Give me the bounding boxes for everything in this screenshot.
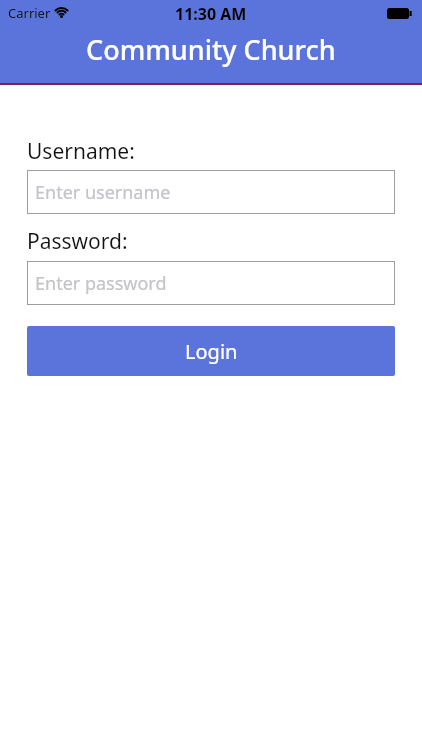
staticText: Password: [27, 227, 128, 256]
button[interactable]: Login [27, 326, 395, 376]
staticText: Enter password [35, 271, 167, 296]
staticText: 11:30 AM [175, 3, 247, 25]
staticText: Enter username [35, 180, 171, 205]
staticText: Username: [27, 137, 135, 166]
staticText: Carrier [8, 4, 51, 22]
staticText: Community Church [86, 31, 336, 68]
button[interactable]: Enter username [27, 170, 395, 214]
button[interactable]: Enter password [27, 261, 395, 305]
staticText: Login [185, 338, 238, 365]
